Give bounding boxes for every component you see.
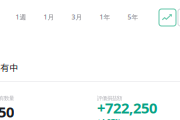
staticText: +722,250: [97, 98, 157, 117]
staticText: 5年: [127, 13, 138, 21]
staticText: 保有数量: [0, 95, 14, 102]
staticText: 評価損益額: [97, 95, 122, 102]
staticText: 1,250: [0, 102, 14, 120]
button[interactable]: 1週: [7, 8, 35, 26]
button[interactable]: 1年: [91, 8, 119, 26]
button[interactable]: 1月: [35, 8, 63, 26]
staticText: 保有中: [0, 63, 18, 72]
button[interactable]: Line chart: [159, 9, 176, 26]
staticText: 3月: [71, 13, 82, 21]
staticText: 1年: [99, 13, 110, 21]
button[interactable]: 3月: [63, 8, 91, 26]
staticText: +4.97%: [97, 117, 121, 120]
button[interactable]: 5年: [119, 8, 147, 26]
staticText: 1週: [15, 13, 26, 21]
staticText: 1月: [43, 13, 54, 21]
button[interactable]: Candlestick chart: [178, 9, 180, 26]
